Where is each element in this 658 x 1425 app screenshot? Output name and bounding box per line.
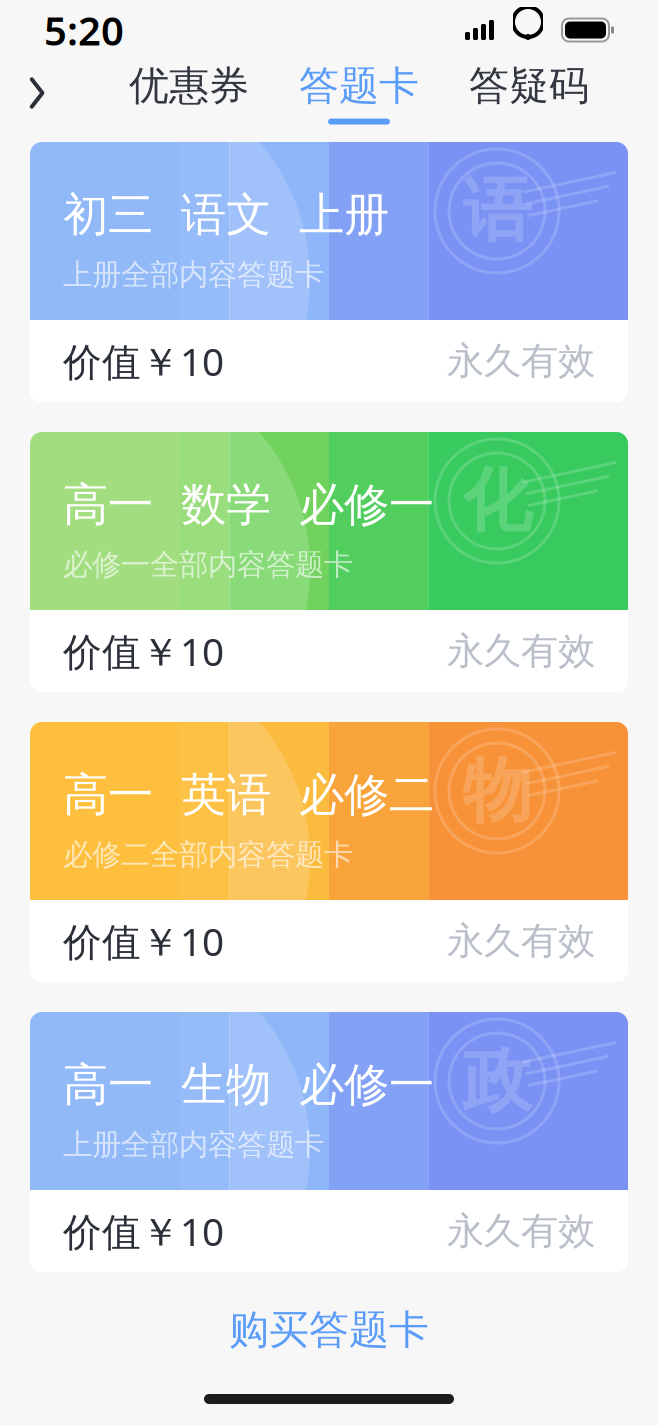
staticText: 永久有效: [447, 1208, 595, 1254]
button[interactable]: 优惠券: [120, 57, 258, 128]
staticText: 答疑码: [469, 61, 589, 110]
staticText: 价值￥10: [63, 625, 224, 677]
staticText: 5:20: [44, 3, 124, 56]
staticText: 购买答题卡: [229, 1305, 429, 1354]
button[interactable]: 化: [0, 432, 658, 692]
button[interactable]: 购买答题卡: [0, 1287, 658, 1373]
staticText: 高二 化学 必修三: [63, 1347, 434, 1403]
staticText: 价值￥10: [63, 915, 224, 967]
staticText: 政: [462, 1038, 531, 1124]
staticText: 化: [462, 458, 531, 544]
button[interactable]: 物: [0, 722, 658, 982]
staticText: 答题卡: [299, 61, 419, 110]
staticText: 永久有效: [447, 918, 595, 964]
staticText: 价值￥10: [63, 1205, 224, 1257]
button[interactable]: 答疑码: [460, 57, 598, 128]
button[interactable]: 答题卡: [290, 57, 428, 128]
staticText: 上册全部内容答题卡: [63, 257, 324, 293]
staticText: 永久有效: [447, 338, 595, 384]
staticText: 优惠券: [129, 61, 249, 110]
staticText: 必修二全部内容答题卡: [63, 837, 353, 873]
staticText: 初三 语文 上册: [63, 187, 389, 243]
staticText: 必修一全部内容答题卡: [63, 547, 353, 583]
staticText: 高一 数学 必修一: [63, 477, 434, 533]
staticText: 高一 生物 必修一: [63, 1057, 434, 1113]
staticText: 上册全部内容答题卡: [63, 1127, 324, 1163]
staticText: 语: [462, 168, 531, 254]
staticText: 物: [462, 748, 531, 834]
staticText: 永久有效: [447, 628, 595, 674]
button[interactable]: Back: [0, 61, 74, 125]
button[interactable]: 政: [0, 1012, 658, 1272]
staticText: 高一 英语 必修二: [63, 767, 434, 823]
staticText: 价值￥10: [63, 335, 224, 387]
button[interactable]: 语: [0, 142, 658, 402]
button[interactable]: 史: [0, 1302, 658, 1425]
